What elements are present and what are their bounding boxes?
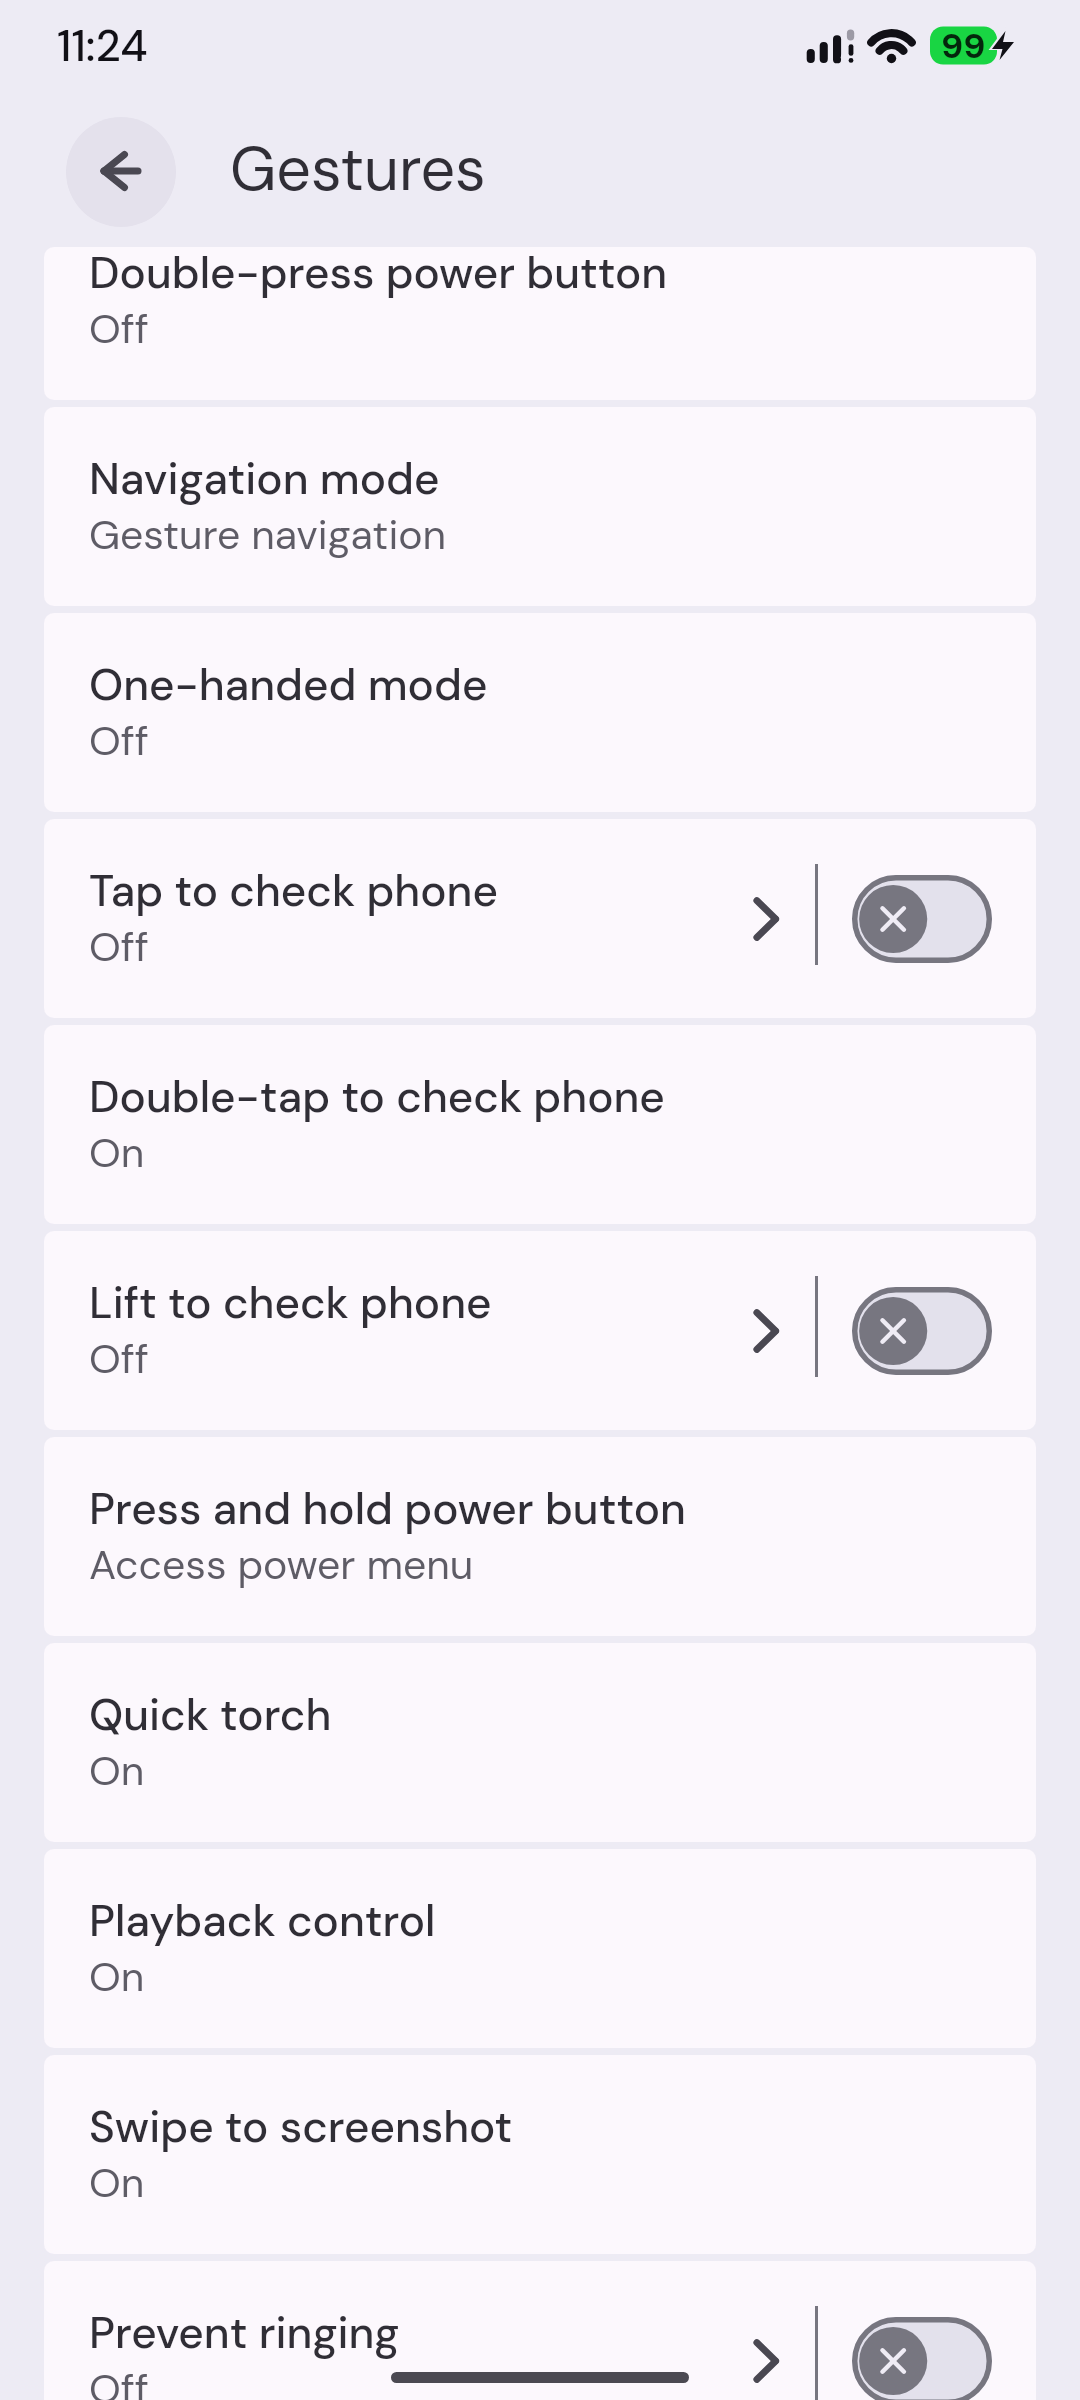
button[interactable]: Back — [66, 117, 176, 227]
staticText: Off — [89, 1332, 149, 1385]
staticText: Double-press power button — [89, 247, 668, 301]
staticText: Playback control — [89, 1892, 436, 1949]
staticText: On — [89, 1744, 145, 1797]
staticText: Tap to check phone — [89, 862, 498, 919]
button[interactable]: Turn on Lift to check phone — [852, 1287, 992, 1375]
staticText: Gestures — [230, 129, 486, 208]
staticText: On — [89, 1950, 145, 2003]
button[interactable]: Navigation mode — [44, 407, 1036, 606]
staticText: On — [89, 1126, 145, 1179]
staticText: Lift to check phone — [89, 1274, 492, 1331]
staticText: On — [89, 2156, 145, 2209]
button[interactable]: Press and hold power button — [44, 1437, 1036, 1636]
button[interactable]: Prevent ringing — [44, 2261, 1036, 2400]
staticText: Swipe to screenshot — [89, 2098, 513, 2155]
button[interactable]: Turn on Prevent ringing — [852, 2317, 992, 2400]
staticText: One-handed mode — [89, 656, 488, 713]
button[interactable]: Lift to check phone — [44, 1231, 1036, 1430]
button[interactable]: One-handed mode — [44, 613, 1036, 812]
staticText: Off — [89, 920, 149, 973]
staticText: Quick torch — [89, 1686, 332, 1743]
staticText: Access power menu — [89, 1538, 474, 1591]
staticText: Gesture navigation — [89, 508, 447, 561]
button[interactable]: Double-tap to check phone — [44, 1025, 1036, 1224]
staticText: Press and hold power button — [89, 1480, 686, 1537]
button[interactable]: Turn on Tap to check phone — [852, 875, 992, 963]
button[interactable]: Swipe to screenshot — [44, 2055, 1036, 2254]
staticText: 11:24 — [57, 17, 148, 74]
staticText: Off — [89, 714, 149, 767]
staticText: Off — [89, 302, 149, 355]
staticText: Off — [89, 2362, 149, 2400]
button[interactable]: Quick torch — [44, 1643, 1036, 1842]
staticText: Double-tap to check phone — [89, 1068, 665, 1125]
button[interactable]: Tap to check phone — [44, 819, 1036, 1018]
staticText: 99 — [941, 23, 986, 69]
button[interactable]: Playback control — [44, 1849, 1036, 2048]
staticText: Navigation mode — [89, 450, 440, 507]
button[interactable]: Open Prevent ringing settings — [731, 2315, 801, 2400]
staticText: Prevent ringing — [89, 2304, 400, 2361]
button[interactable]: Open Lift to check phone settings — [731, 1285, 801, 1377]
button[interactable]: Double-press power button — [44, 247, 1036, 400]
button[interactable]: Open Tap to check phone settings — [731, 873, 801, 965]
